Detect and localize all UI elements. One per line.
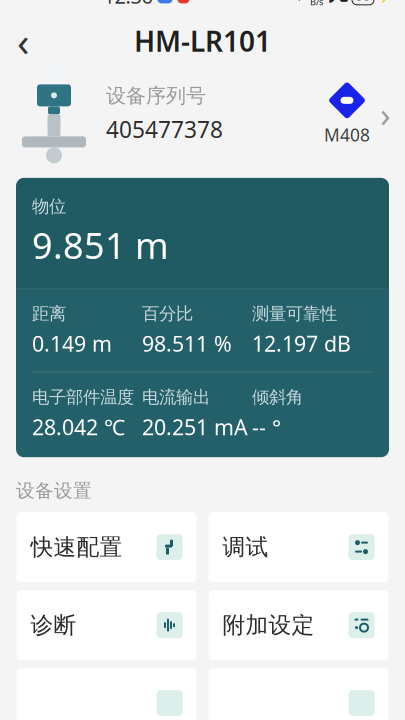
button[interactable]: 调试 [208, 512, 388, 582]
button[interactable] [208, 668, 388, 720]
staticText: ‹ [17, 14, 29, 67]
staticText: HM-LR101 [134, 22, 271, 59]
staticText: ⚡ [378, 0, 395, 3]
staticText: 电子部件温度 [32, 387, 134, 408]
staticText: ◗ [328, 0, 336, 4]
staticText: 倾斜角 [252, 387, 303, 408]
staticText: 0.149 m [32, 329, 112, 358]
staticText: 物位 [32, 196, 66, 217]
staticText: 58 [356, 0, 370, 4]
staticText: 距离 [32, 303, 66, 324]
staticText: 12:36 [103, 0, 152, 9]
staticText: 设备设置 [16, 479, 92, 502]
button[interactable]: Back [0, 18, 46, 64]
button[interactable]: 诊断 [16, 590, 196, 660]
button[interactable]: 附加设定 [208, 590, 388, 660]
staticText: 405477378 [106, 114, 223, 144]
staticText: 诊断 [30, 611, 76, 639]
button[interactable] [16, 668, 196, 720]
staticText: 调试 [222, 533, 268, 561]
staticText: ✳ [293, 0, 305, 4]
staticText: 12.197 dB [252, 329, 351, 358]
staticText: M408 [324, 123, 370, 146]
staticText: 28.042 ℃ [32, 413, 125, 441]
staticText: 快速配置 [30, 533, 122, 561]
staticText: 9.851 m [32, 221, 169, 269]
staticText: -- ° [252, 413, 281, 441]
staticText: 测量可靠性 [252, 303, 337, 324]
staticText: 电流输出 [142, 387, 210, 408]
button[interactable]: 设备序列号 [0, 64, 405, 164]
staticText: 20.251 mA [142, 413, 248, 441]
staticText: B/s [310, 0, 323, 8]
staticText: 附加设定 [222, 611, 314, 639]
staticText: 98.511 % [142, 329, 232, 358]
button[interactable]: 快速配置 [16, 512, 196, 582]
staticText: 设备序列号 [106, 83, 206, 108]
staticText: › [380, 91, 391, 137]
staticText: 百分比 [142, 303, 193, 324]
